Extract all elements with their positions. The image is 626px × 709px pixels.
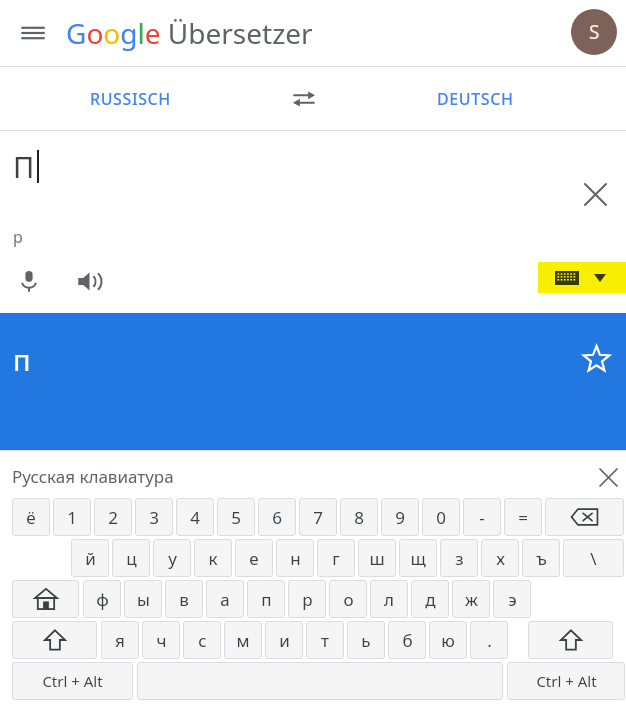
button[interactable]: ы [124,580,162,618]
staticText: \ [590,547,597,570]
button[interactable]: ё [12,498,50,536]
staticText: ы [137,588,150,611]
staticText: ж [465,588,478,611]
button[interactable]: ю [429,621,467,659]
button[interactable]: 5 [217,498,255,536]
button[interactable]: Menu [12,12,54,54]
staticText: н [290,547,301,570]
staticText: - [479,506,485,529]
button[interactable]: п [0,313,626,450]
staticText: л [384,588,394,611]
staticText: 9 [395,506,405,529]
button[interactable]: з [440,539,478,577]
staticText: = [518,506,528,529]
button[interactable]: Voice input [8,260,50,302]
button[interactable]: г [317,539,355,577]
button[interactable]: о [329,580,367,618]
staticText: т [321,629,329,652]
button[interactable]: ж [452,580,490,618]
button[interactable]: а [206,580,244,618]
staticText: ь [361,629,371,652]
button[interactable]: 8 [340,498,378,536]
button[interactable]: Save translation [573,336,619,382]
button[interactable]: Ctrl + Alt [12,662,133,700]
button[interactable]: 3 [135,498,173,536]
button[interactable]: 7 [299,498,337,536]
staticText: 5 [231,506,241,529]
button[interactable]: = [504,498,542,536]
staticText: о [343,588,354,611]
staticText: 2 [108,506,118,529]
staticText: 8 [354,506,364,529]
button[interactable]: л [370,580,408,618]
button[interactable]: я [101,621,139,659]
staticText: ш [369,547,385,570]
button[interactable]: RUSSISCH [40,67,220,130]
button[interactable]: ъ [522,539,560,577]
button[interactable]: Keyboard options [538,262,626,293]
button[interactable]: Shift [528,621,613,659]
button[interactable]: Swap languages [283,78,325,120]
button[interactable]: Account [571,9,617,55]
button[interactable]: \ [563,539,624,577]
button[interactable]: Shift [12,621,97,659]
staticText: S [589,19,600,45]
button[interactable]: щ [399,539,437,577]
staticText: з [455,547,464,570]
button[interactable]: Google Übersetzer [66,0,313,66]
button[interactable]: ь [347,621,385,659]
staticText: м [236,629,250,652]
button[interactable]: 0 [422,498,460,536]
button[interactable]: ш [358,539,396,577]
staticText: п [261,588,272,611]
button[interactable]: Listen [68,260,110,302]
staticText: е [249,547,259,570]
button[interactable]: й [71,539,109,577]
button[interactable]: п [247,580,285,618]
button[interactable]: ц [112,539,150,577]
button[interactable]: Clear text [573,172,617,216]
staticText: х [496,547,505,570]
staticText: и [279,629,290,652]
button[interactable]: и [265,621,303,659]
button[interactable]: е [235,539,273,577]
button[interactable]: х [481,539,519,577]
button[interactable]: 2 [94,498,132,536]
button[interactable]: у [153,539,191,577]
button[interactable]: т [306,621,344,659]
staticText: 0 [436,506,446,529]
staticText: Google Übersetzer [66,14,313,52]
staticText: б [402,629,413,652]
staticText: р [13,226,23,248]
staticText: й [85,547,96,570]
button[interactable]: - [463,498,501,536]
button[interactable]: м [224,621,262,659]
button[interactable]: Close keyboard [590,459,626,495]
button[interactable]: в [165,580,203,618]
button[interactable]: 4 [176,498,214,536]
button[interactable]: 9 [381,498,419,536]
button[interactable]: Caps lock [12,580,79,618]
button[interactable]: р [288,580,326,618]
staticText: 6 [272,506,282,529]
button[interactable]: DEUTSCH [385,67,565,130]
button[interactable]: к [194,539,232,577]
staticText: RUSSISCH [90,88,171,110]
button[interactable]: э [493,580,531,618]
button[interactable]: ф [83,580,121,618]
button[interactable]: д [411,580,449,618]
staticText: э [508,588,517,611]
button[interactable]: н [276,539,314,577]
staticText: ё [26,506,36,529]
staticText: ю [441,629,455,652]
button[interactable] [137,662,503,700]
button[interactable]: Ctrl + Alt [507,662,625,700]
button[interactable]: ч [142,621,180,659]
button[interactable]: . [470,621,508,659]
button[interactable]: 1 [53,498,91,536]
button[interactable]: б [388,621,426,659]
button[interactable]: Backspace [545,498,624,536]
button[interactable]: 6 [258,498,296,536]
staticText: ч [156,629,167,652]
button[interactable]: с [183,621,221,659]
